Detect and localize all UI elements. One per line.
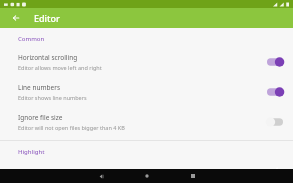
button[interactable]: Horizontal scrolling (0, 47, 293, 77)
button[interactable]: Line numbers (0, 77, 293, 107)
staticText: Horizontal scrolling (18, 53, 78, 62)
button[interactable]: Back (86, 169, 116, 183)
staticText: Highlight (18, 148, 45, 156)
button[interactable]: Recent apps (178, 169, 208, 183)
staticText: Editor (34, 12, 60, 24)
staticText: Editor shows line numbers (18, 94, 87, 101)
staticText: Editor will not open files bigger than 4… (18, 124, 125, 131)
staticText: Editor allows move left and right (18, 64, 102, 71)
button[interactable]: Navigate up (8, 10, 24, 26)
button[interactable]: Ignore file size (0, 107, 293, 137)
staticText: Common (18, 35, 45, 43)
staticText: Ignore file size (18, 113, 63, 122)
button[interactable]: Home (132, 169, 162, 183)
staticText: Line numbers (18, 83, 61, 92)
